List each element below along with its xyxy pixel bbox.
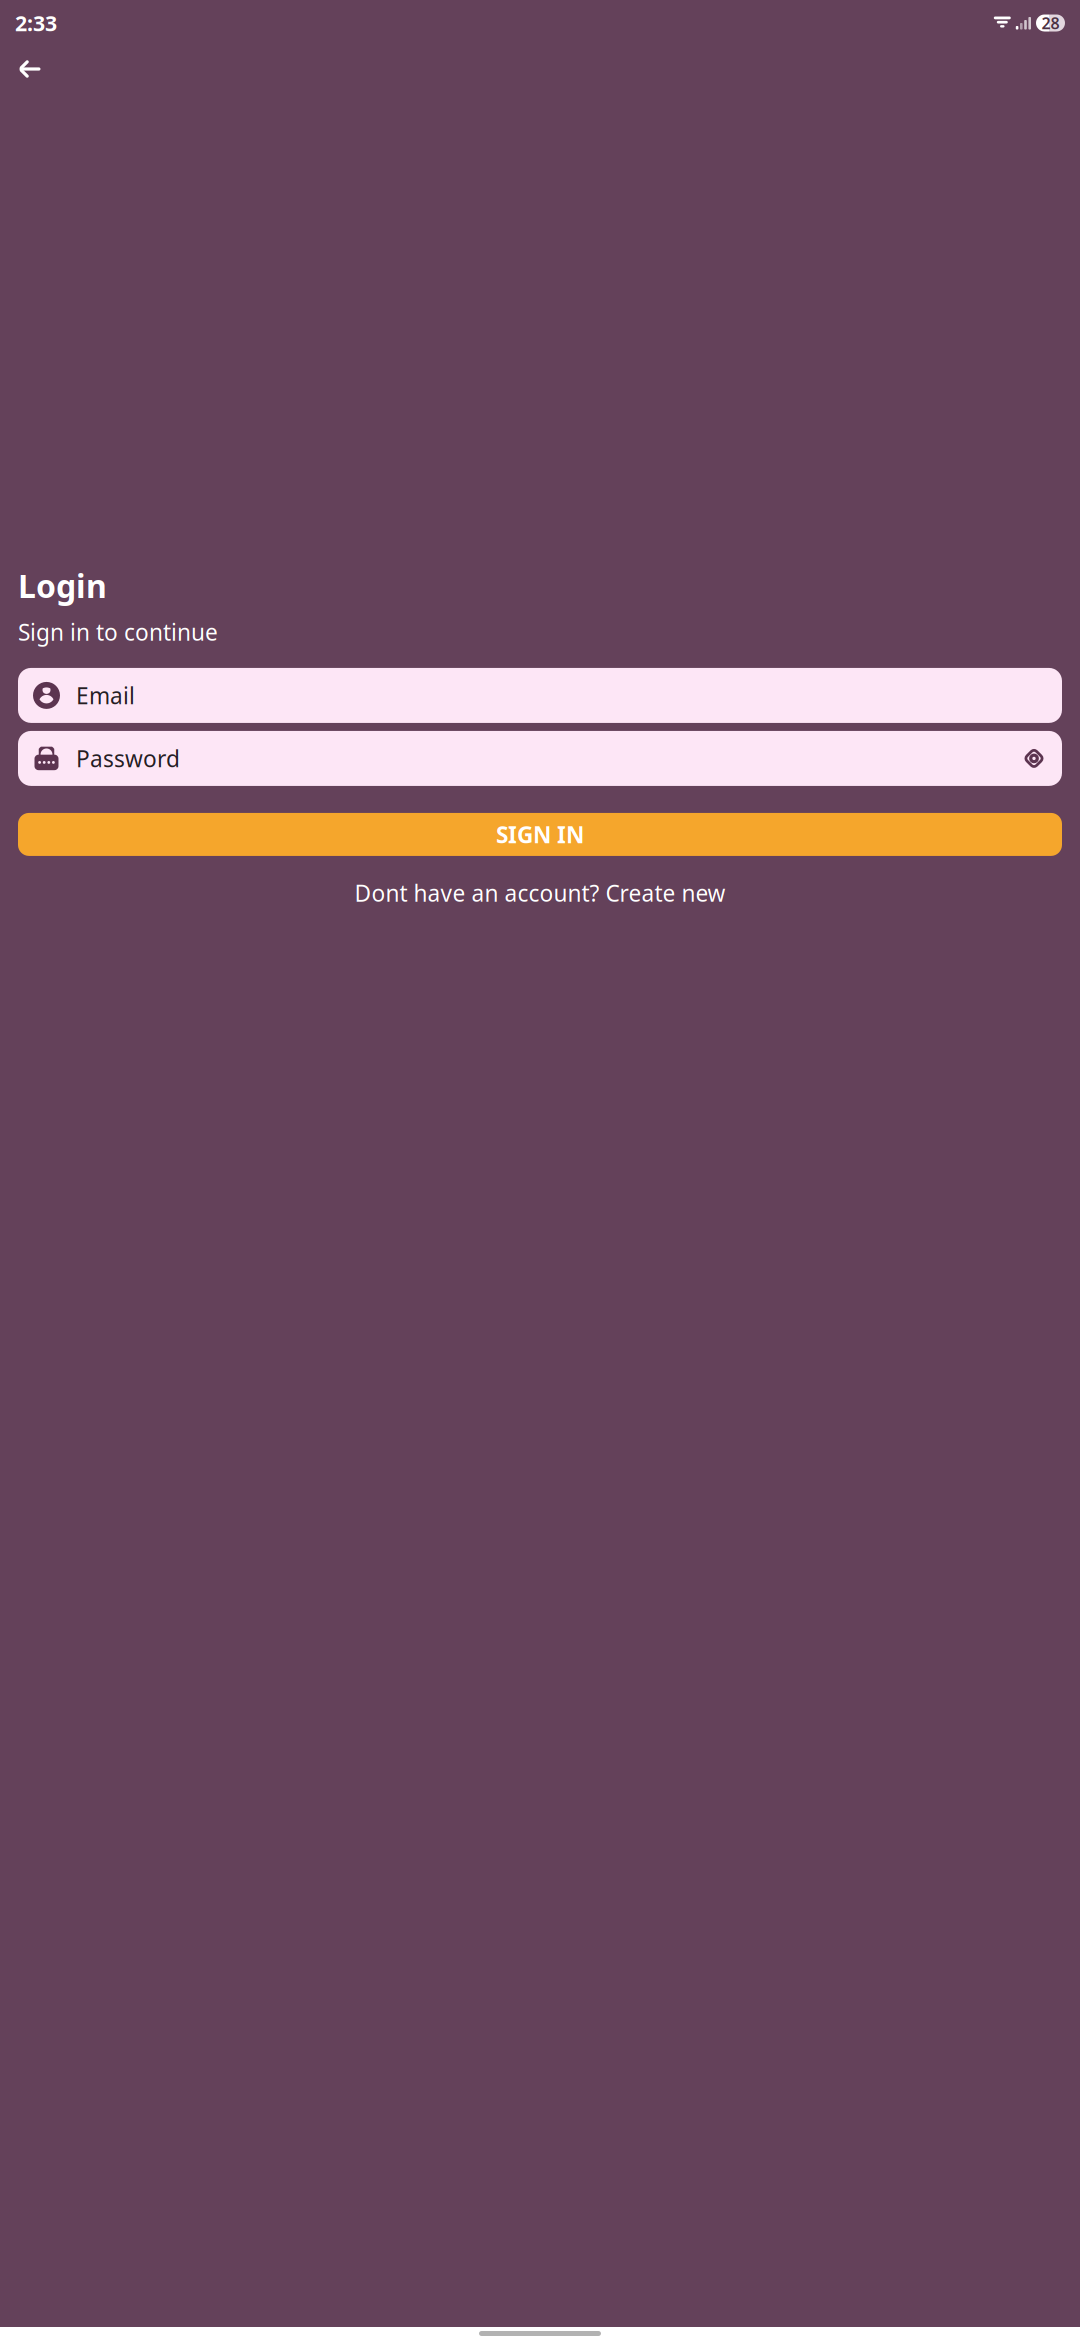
staticText: Sign in to continue xyxy=(18,617,218,647)
button[interactable]: Password xyxy=(18,731,1062,786)
button[interactable]: SIGN IN xyxy=(18,813,1062,856)
button[interactable]: Dont have an account? Create new xyxy=(18,869,1062,917)
staticText: Email xyxy=(76,680,135,710)
staticText: 28 xyxy=(1041,12,1059,34)
staticText: Password xyxy=(76,743,180,773)
button[interactable]: Email xyxy=(18,668,1062,723)
staticText: 2:33 xyxy=(15,9,57,37)
button[interactable]: Back xyxy=(7,48,52,90)
staticText: Dont have an account? Create new xyxy=(354,878,725,908)
staticText: SIGN IN xyxy=(496,819,584,849)
staticText: Login xyxy=(18,564,107,607)
